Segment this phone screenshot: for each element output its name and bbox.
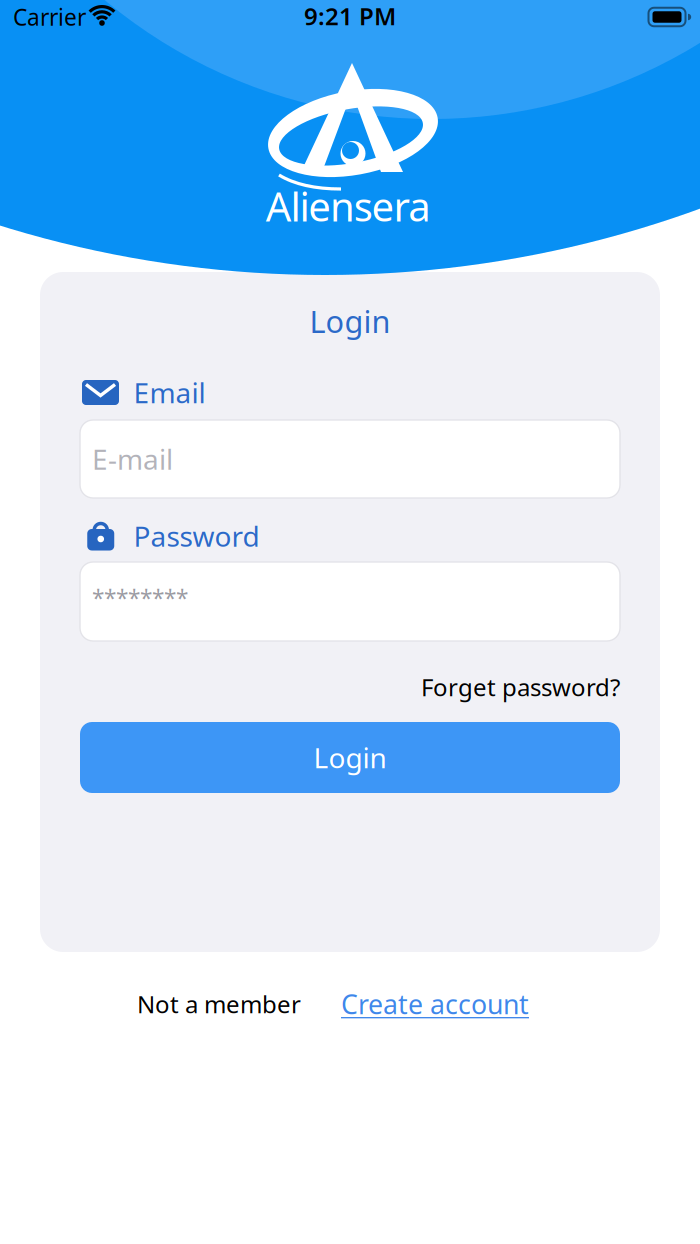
staticText: E-mail — [92, 440, 173, 478]
staticText: Forget password? — [421, 671, 620, 703]
button[interactable]: Login — [80, 722, 620, 793]
button[interactable]: ******** — [80, 562, 620, 641]
staticText: Login — [309, 301, 390, 341]
staticText: ******** — [92, 583, 188, 613]
staticText: Email — [133, 374, 205, 411]
button[interactable]: Forget password? — [421, 671, 620, 703]
button[interactable]: E-mail — [80, 420, 620, 498]
staticText: 9:21 PM — [304, 0, 396, 32]
staticText: Password — [133, 517, 259, 555]
staticText: Aliensera — [266, 179, 430, 232]
staticText: Login — [313, 739, 386, 776]
staticText: Create account — [341, 986, 529, 1022]
staticText: Carrier — [13, 2, 86, 32]
staticText: Not a member — [137, 988, 301, 1020]
button[interactable]: Create account — [341, 986, 529, 1022]
